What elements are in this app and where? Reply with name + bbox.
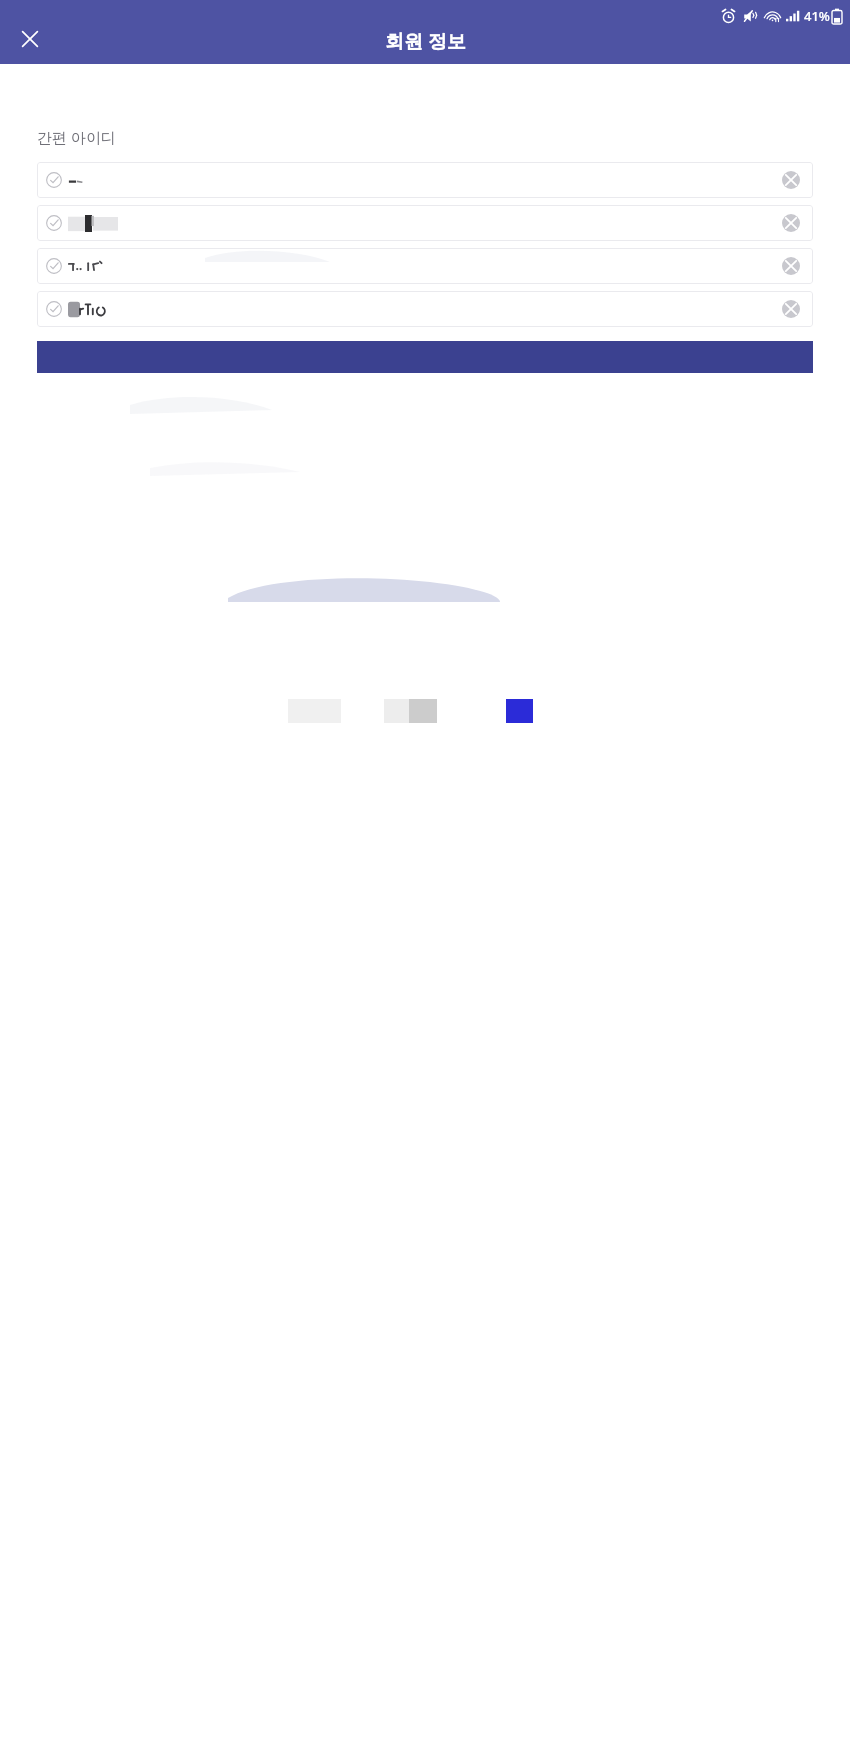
button[interactable]: Delete <box>776 294 806 324</box>
button[interactable]: Delete <box>37 248 813 284</box>
staticText: 회원 정보 <box>385 28 466 54</box>
button[interactable]: Close <box>8 17 52 61</box>
staticText: 간편 아이디 <box>37 127 116 147</box>
button[interactable]: Delete <box>776 251 806 281</box>
button[interactable]: Delete <box>37 291 813 327</box>
button[interactable]: Delete <box>776 165 806 195</box>
button[interactable]: Delete <box>37 162 813 198</box>
button[interactable]: Delete <box>37 205 813 241</box>
staticText: 41% <box>804 7 830 25</box>
button[interactable]: Delete <box>776 208 806 238</box>
